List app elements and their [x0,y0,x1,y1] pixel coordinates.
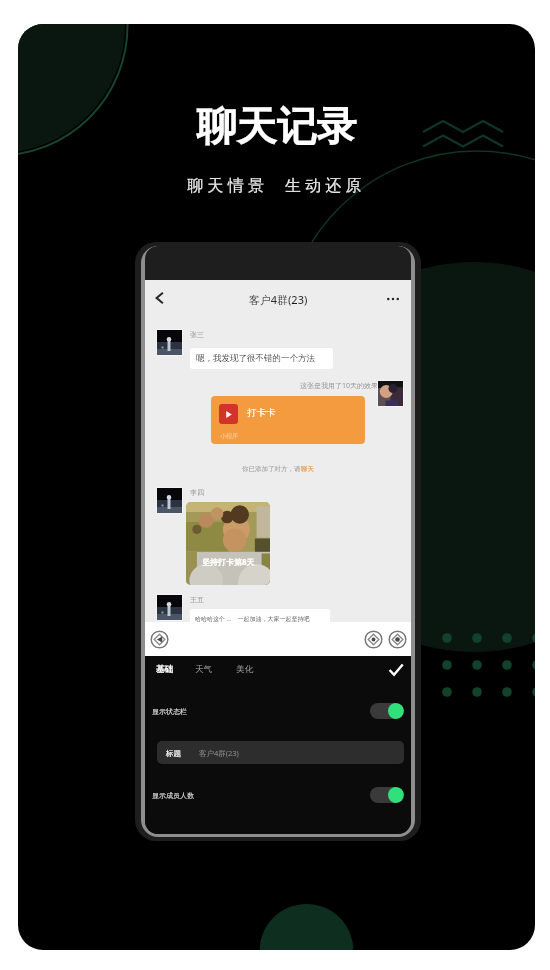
staticText: 这张是我用了10天的效果 [300,381,379,391]
staticText: 客户4群(23) [145,292,411,307]
staticText: 聊天 [301,465,314,473]
staticText: 小程序 [220,432,238,440]
staticText: 聊天情景 生动还原 [18,174,535,196]
staticText: 打卡卡 [247,407,276,419]
button[interactable]: 基础 [156,664,173,675]
button[interactable]: 美化 [236,664,253,675]
staticText: 客户4群(23) [199,748,239,758]
button[interactable]: More [388,630,407,649]
staticText: 显示成员人数 [152,791,194,800]
staticText: 王五 [190,595,204,604]
button[interactable]: 显示成员人数 [152,787,404,803]
button[interactable]: More options [383,289,403,309]
staticText: 李四 [190,488,204,497]
staticText: 哈哈哈这个 ... 一起加油，大家一起坚持吧 [195,615,310,623]
staticText: 显示状态栏 [152,707,187,716]
staticText: 聊天记录 [18,101,535,151]
button[interactable]: Back [151,289,169,307]
button[interactable]: 天气 [195,664,212,675]
staticText: 坚持打卡第8天 [202,556,255,567]
button[interactable]: Confirm [387,661,405,679]
staticText: 你已添加了对方，请 [242,465,301,473]
button[interactable]: 显示状态栏 [152,703,404,719]
staticText: 标题 [166,749,181,758]
staticText: 嗯，我发现了很不错的一个方法 [196,353,315,364]
button[interactable]: 标题 [157,741,404,764]
button[interactable]: Voice message [150,630,169,649]
button[interactable]: Emoji [364,630,383,649]
staticText: 张三 [190,330,204,339]
